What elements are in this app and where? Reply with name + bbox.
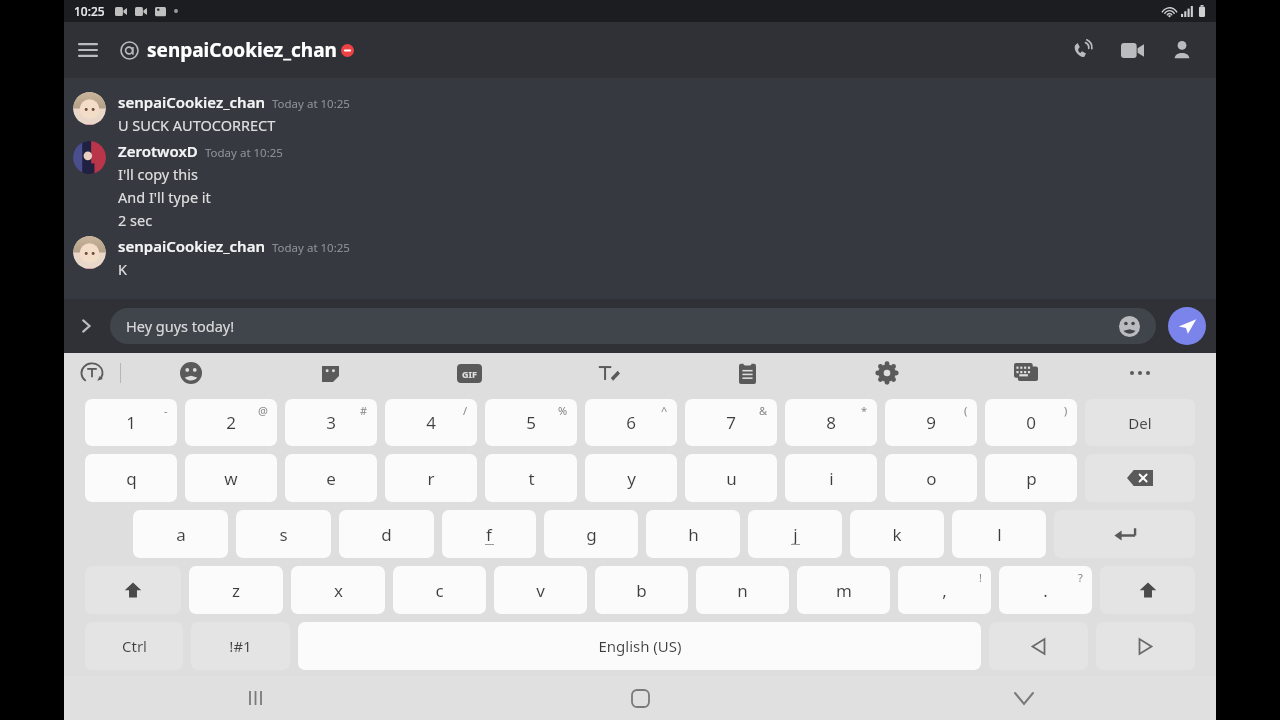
button[interactable]: g (544, 510, 638, 558)
button[interactable]: 0 (985, 399, 1077, 446)
button[interactable]: Expand actions (64, 304, 108, 348)
button[interactable]: h (646, 510, 740, 558)
button[interactable] (73, 236, 106, 269)
staticText: o (926, 467, 937, 490)
button[interactable]: e (285, 454, 377, 502)
button[interactable]: Recent apps (64, 676, 448, 720)
staticText: ) (1064, 403, 1068, 418)
button[interactable]: u (685, 454, 777, 502)
staticText: ( (964, 403, 968, 418)
button[interactable]: Stickers (261, 353, 400, 393)
button[interactable]: Settings (817, 353, 956, 393)
button[interactable]: Text editing (539, 353, 678, 393)
button[interactable]: Open navigation menu (64, 26, 112, 74)
staticText: !#1 (229, 636, 252, 656)
staticText: Ctrl (122, 636, 147, 656)
button[interactable]: Backspace (1085, 454, 1195, 502)
staticText: ! (979, 570, 982, 585)
button[interactable]: p (985, 454, 1077, 502)
button[interactable]: o (885, 454, 977, 502)
button[interactable]: 6 (585, 399, 677, 446)
button[interactable]: n (696, 566, 789, 614)
button[interactable]: Emoji (121, 353, 261, 393)
staticText: 1 (126, 411, 136, 434)
button[interactable]: . (999, 566, 1092, 614)
staticText: x (334, 579, 343, 602)
button[interactable]: Show members (1158, 26, 1206, 74)
button[interactable] (73, 92, 106, 125)
button[interactable]: Del (1085, 399, 1195, 446)
button[interactable]: 5 (485, 399, 577, 446)
staticText: b (636, 579, 647, 602)
button[interactable]: 4 (385, 399, 477, 446)
button[interactable]: l (952, 510, 1046, 558)
staticText: e (326, 467, 336, 490)
button[interactable]: , (898, 566, 991, 614)
button[interactable]: 2 (185, 399, 277, 446)
button[interactable]: Shift (1100, 566, 1195, 614)
button[interactable]: Hide keyboard (832, 676, 1216, 720)
button[interactable]: Move cursor right (1096, 622, 1195, 670)
button[interactable]: t (485, 454, 577, 502)
staticText: I'll copy this (118, 164, 198, 184)
staticText: q (126, 467, 137, 490)
staticText: 2 (226, 411, 236, 434)
button[interactable]: Emoji (1119, 316, 1140, 337)
staticText: senpaiCookiez_chan (147, 37, 337, 63)
staticText: And I'll type it (118, 187, 211, 207)
button[interactable]: f (442, 510, 536, 558)
button[interactable]: GIF (400, 353, 539, 393)
button[interactable]: s (236, 510, 331, 558)
button[interactable]: Keyboard modes (956, 353, 1095, 393)
staticText: Del (1128, 413, 1152, 433)
staticText: Today at 10:25 (272, 96, 350, 112)
button[interactable]: c (393, 566, 486, 614)
button[interactable]: k (850, 510, 944, 558)
button[interactable]: v (494, 566, 587, 614)
button[interactable]: Shift (85, 566, 181, 614)
button[interactable]: m (797, 566, 890, 614)
button[interactable]: Move cursor left (989, 622, 1088, 670)
staticText: v (536, 579, 545, 602)
button[interactable]: 1 (85, 399, 177, 446)
button[interactable]: r (385, 454, 477, 502)
staticText: z (232, 579, 240, 602)
staticText: ZerotwoxD (118, 141, 198, 161)
staticText: u (726, 467, 737, 490)
button[interactable]: 7 (685, 399, 777, 446)
staticText: senpaiCookiez_chan (118, 92, 265, 112)
button[interactable]: q (85, 454, 177, 502)
button[interactable]: Clipboard (678, 353, 817, 393)
staticText: Today at 10:25 (272, 240, 350, 256)
button[interactable]: y (585, 454, 677, 502)
button[interactable]: d (339, 510, 434, 558)
button[interactable]: More options (1095, 353, 1185, 393)
button[interactable]: Home (448, 676, 832, 720)
button[interactable]: 9 (885, 399, 977, 446)
staticText: w (224, 467, 238, 490)
button[interactable]: Enter (1054, 510, 1195, 558)
staticText: 9 (926, 411, 936, 434)
button[interactable]: Start voice call (1058, 26, 1106, 74)
button[interactable]: j (748, 510, 842, 558)
button[interactable]: i (785, 454, 877, 502)
button[interactable]: Start video call (1108, 26, 1156, 74)
button[interactable]: w (185, 454, 277, 502)
button[interactable]: a (133, 510, 228, 558)
staticText: i (829, 467, 834, 490)
button[interactable]: b (595, 566, 688, 614)
staticText: 0 (1026, 411, 1036, 434)
button[interactable]: Translate (64, 353, 120, 393)
button[interactable] (73, 141, 106, 174)
button[interactable]: 8 (785, 399, 877, 446)
button[interactable]: !#1 (191, 622, 290, 670)
button[interactable]: senpaiCookiez_chan (120, 37, 354, 63)
button[interactable]: z (189, 566, 283, 614)
button[interactable]: English (US) (298, 622, 981, 670)
button[interactable]: Send message (1168, 307, 1206, 345)
button[interactable]: x (291, 566, 385, 614)
button[interactable]: 3 (285, 399, 377, 446)
button[interactable]: Hey guys today! (110, 308, 1156, 344)
button[interactable]: Ctrl (85, 622, 183, 670)
staticText: ^ (661, 403, 668, 418)
